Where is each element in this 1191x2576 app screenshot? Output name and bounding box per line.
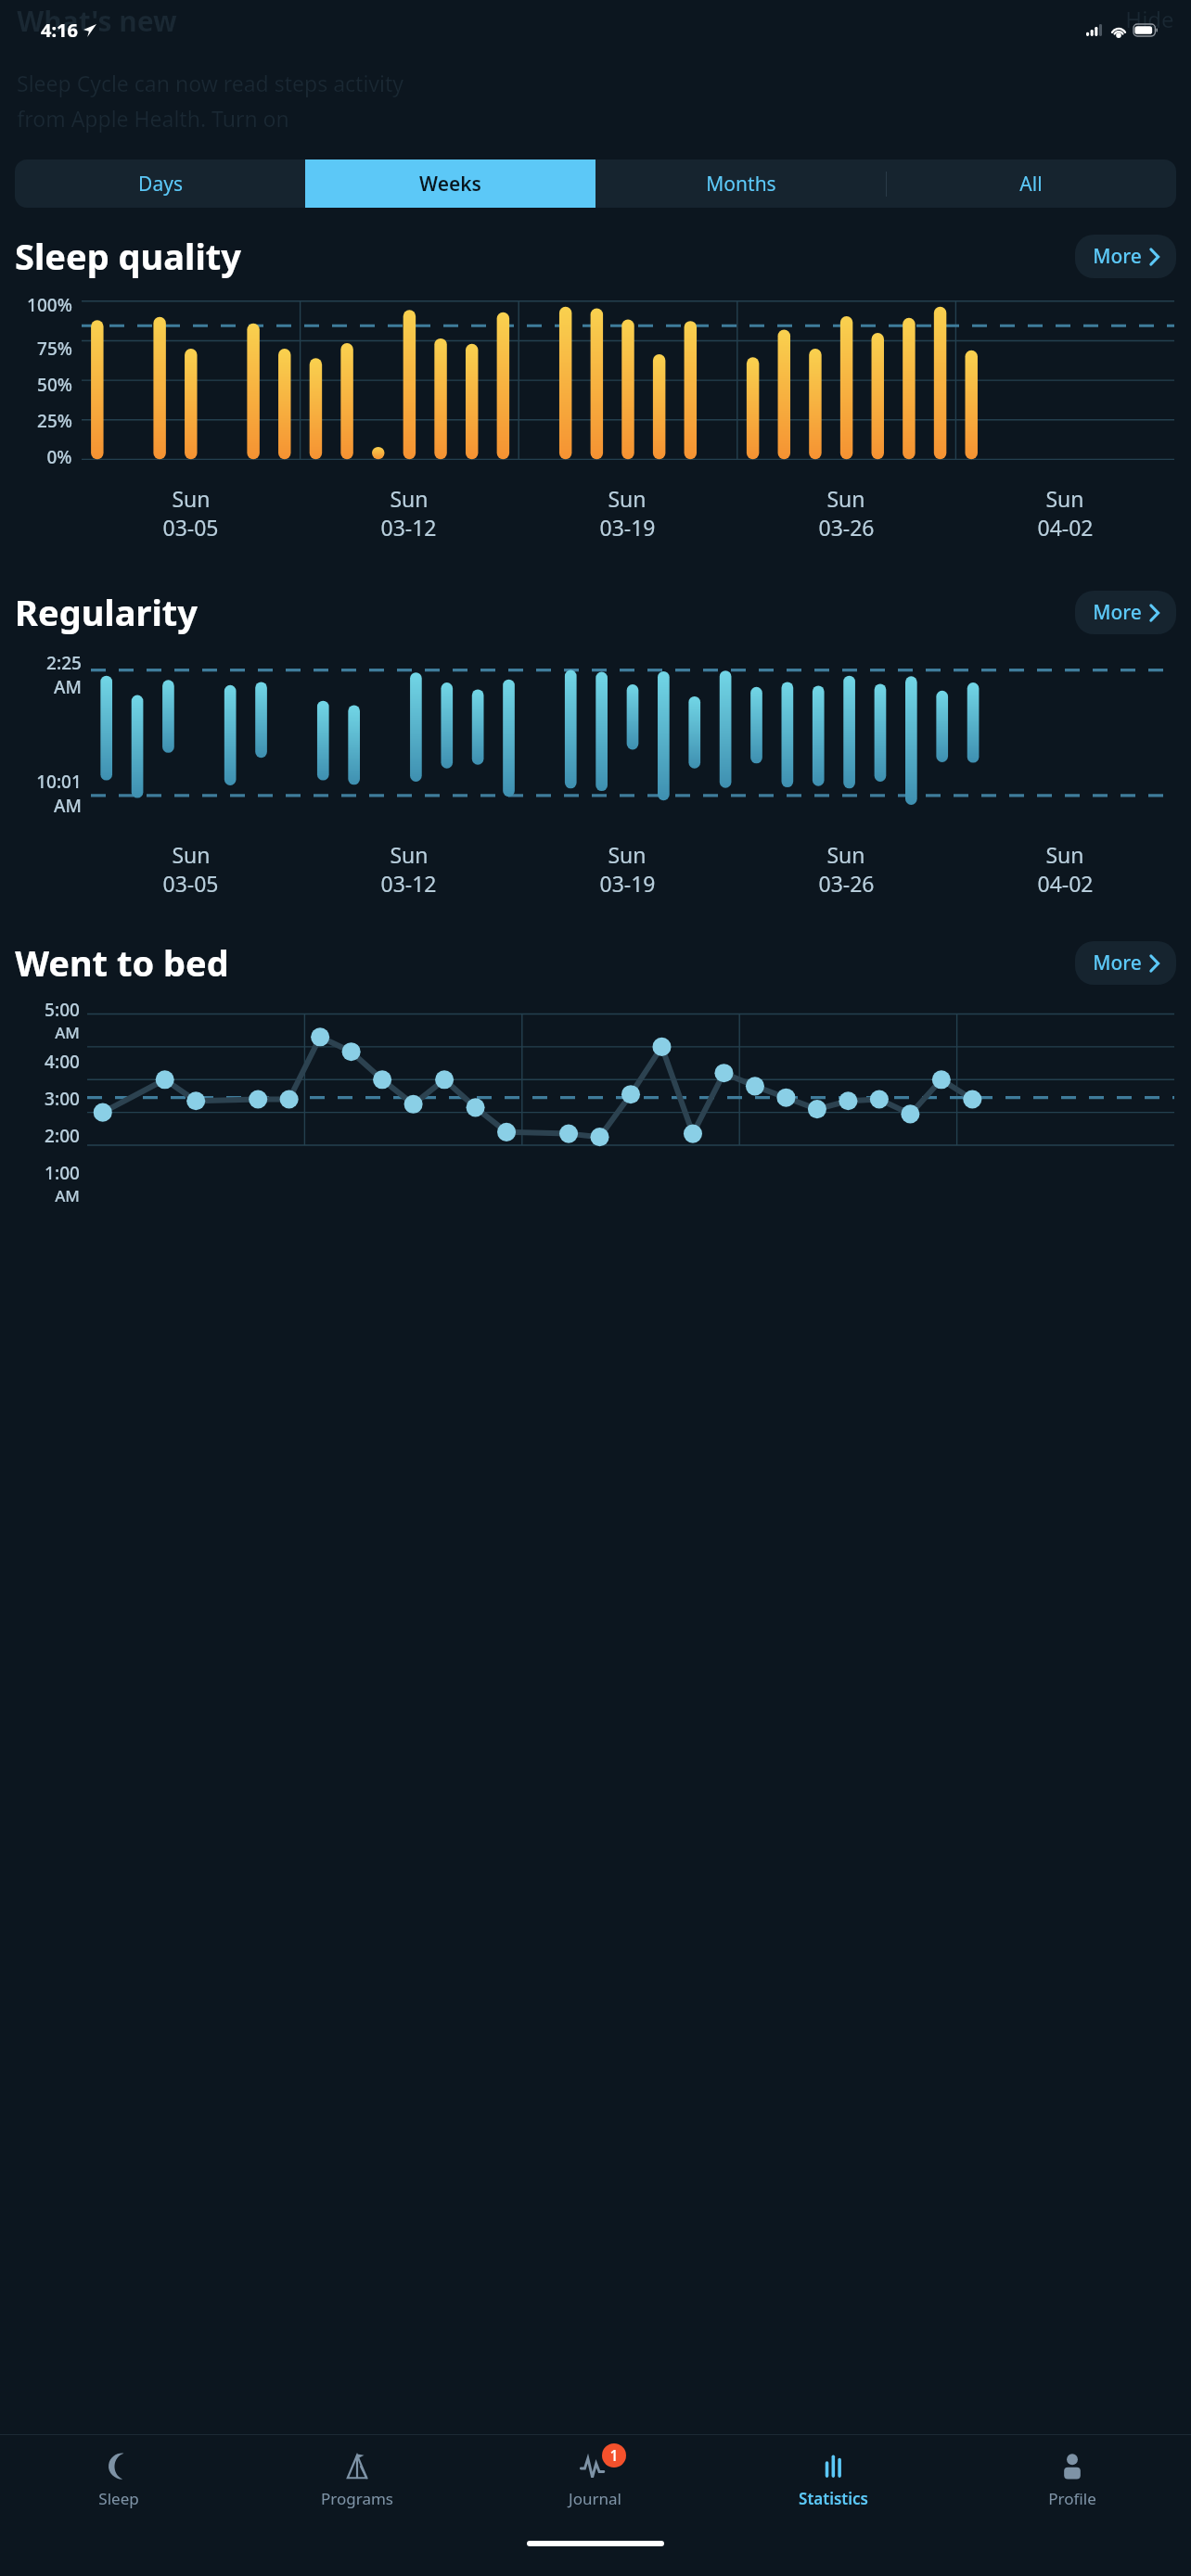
staticText: Sun: [826, 484, 865, 513]
staticText: AM: [55, 1022, 80, 1043]
staticText: 03-12: [380, 869, 437, 898]
staticText: Programs: [321, 2488, 393, 2509]
button[interactable]: Journal: [476, 2435, 714, 2524]
staticText: 100%: [27, 293, 72, 317]
staticText: 03-12: [380, 513, 437, 542]
staticText: Sun: [608, 484, 647, 513]
staticText: 2:00: [45, 1124, 80, 1148]
staticText: Sun: [608, 840, 647, 869]
staticText: Weeks: [419, 171, 481, 198]
staticText: from Apple Health. Turn on: [17, 104, 289, 133]
staticText: Hide: [1125, 4, 1174, 34]
staticText: 0%: [46, 445, 72, 469]
staticText: 4:16: [41, 18, 78, 43]
staticText: Months: [706, 171, 776, 198]
button[interactable]: Weeks: [305, 159, 595, 208]
staticText: Days: [138, 171, 183, 198]
staticText: 03-19: [599, 869, 656, 898]
staticText: Sleep quality: [15, 232, 241, 280]
button[interactable]: Months: [595, 159, 886, 208]
staticText: All: [1019, 171, 1043, 198]
staticText: 03-26: [818, 513, 875, 542]
button[interactable]: Sleep: [0, 2435, 237, 2524]
staticText: Regularity: [15, 588, 198, 636]
staticText: Sun: [826, 840, 865, 869]
staticText: 5:00: [45, 998, 80, 1022]
staticText: Sun: [1045, 840, 1084, 869]
staticText: 75%: [37, 337, 72, 361]
staticText: Sun: [172, 840, 211, 869]
staticText: What's new: [17, 2, 177, 40]
staticText: 03-19: [599, 513, 656, 542]
staticText: 1:00: [45, 1161, 80, 1185]
button[interactable]: More: [1075, 941, 1176, 985]
staticText: More: [1093, 599, 1142, 626]
staticText: Sleep Cycle can now read steps activity: [17, 69, 403, 97]
staticText: 50%: [37, 373, 72, 397]
staticText: More: [1093, 243, 1142, 270]
staticText: Sleep: [98, 2488, 139, 2509]
button[interactable]: More: [1075, 235, 1176, 278]
button[interactable]: Statistics: [714, 2435, 953, 2524]
staticText: Went to bed: [15, 938, 229, 987]
button[interactable]: Profile: [953, 2435, 1191, 2524]
staticText: AM: [54, 675, 82, 699]
staticText: AM: [55, 1185, 80, 1206]
button[interactable]: Days: [15, 159, 305, 208]
staticText: Journal: [569, 2488, 621, 2509]
staticText: Statistics: [799, 2488, 868, 2509]
staticText: 03-05: [162, 513, 219, 542]
staticText: 4:00: [45, 1050, 80, 1074]
staticText: 25%: [37, 409, 72, 433]
staticText: 2:25: [46, 651, 82, 675]
staticText: 04-02: [1037, 869, 1094, 898]
staticText: Sun: [390, 484, 429, 513]
staticText: More: [1093, 950, 1142, 976]
staticText: Sun: [390, 840, 429, 869]
staticText: 3:00: [45, 1087, 80, 1111]
staticText: 10:01: [36, 770, 82, 794]
staticText: AM: [54, 794, 82, 818]
staticText: Sun: [1045, 484, 1084, 513]
staticText: 03-05: [162, 869, 219, 898]
button[interactable]: Programs: [237, 2435, 476, 2524]
staticText: Profile: [1048, 2488, 1096, 2509]
button[interactable]: More: [1075, 591, 1176, 634]
staticText: Sun: [172, 484, 211, 513]
staticText: 04-02: [1037, 513, 1094, 542]
staticText: 1: [609, 2445, 619, 2466]
staticText: 03-26: [818, 869, 875, 898]
button[interactable]: All: [886, 159, 1176, 208]
